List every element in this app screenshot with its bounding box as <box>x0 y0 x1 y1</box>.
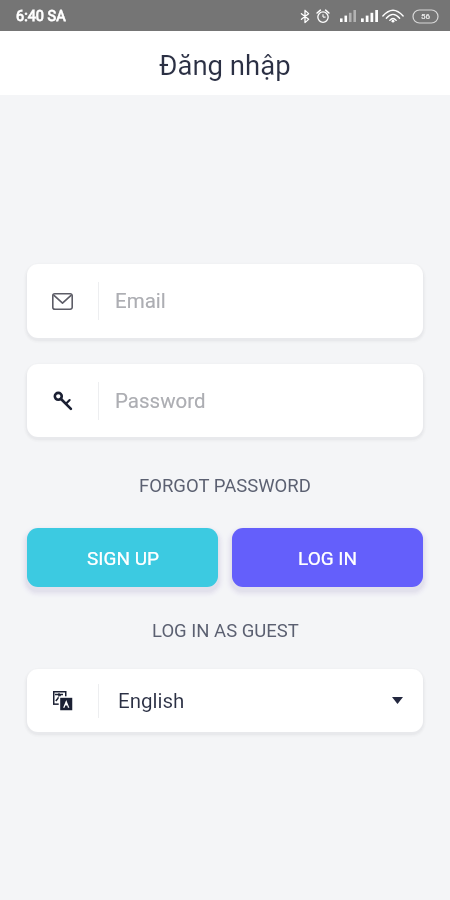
staticText: LOG IN <box>298 547 358 569</box>
button[interactable]: Email <box>27 264 423 338</box>
staticText: 6:40 SA <box>16 8 66 25</box>
staticText: 56 <box>421 12 430 21</box>
staticText: English <box>118 689 185 713</box>
button[interactable]: LOG IN AS GUEST <box>142 616 309 646</box>
button[interactable]: Language <box>27 669 423 732</box>
staticText: Email <box>115 289 166 313</box>
staticText: Đăng nhập <box>159 49 291 81</box>
staticText: SIGN UP <box>87 547 159 569</box>
staticText: Password <box>115 389 206 413</box>
other: Language <box>53 691 73 711</box>
other: Email <box>52 293 73 310</box>
button[interactable]: LOG IN <box>232 528 423 587</box>
button[interactable]: Password <box>27 364 423 437</box>
other: Expand <box>392 697 403 704</box>
button[interactable]: SIGN UP <box>27 528 218 587</box>
other: Password <box>52 390 73 411</box>
button[interactable]: FORGOT PASSWORD <box>129 471 321 501</box>
